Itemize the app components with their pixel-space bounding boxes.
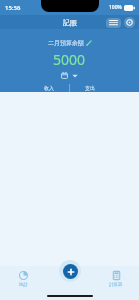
staticText: 100% bbox=[109, 4, 122, 11]
button[interactable]: 統計 bbox=[0, 266, 46, 288]
button[interactable]: 二月預算余額 bbox=[46, 38, 94, 48]
staticText: 統計 bbox=[19, 282, 28, 288]
staticText: 計算器 bbox=[109, 282, 123, 288]
staticText: 5000 bbox=[53, 50, 86, 69]
button[interactable]: 收入 bbox=[29, 84, 69, 92]
button[interactable]: Settings bbox=[124, 17, 135, 28]
button[interactable]: 計算器 bbox=[93, 266, 139, 288]
staticText: 支出 bbox=[85, 85, 95, 91]
button[interactable]: List view bbox=[106, 18, 121, 28]
button[interactable]: 支出 bbox=[70, 84, 110, 92]
button[interactable]: Select month bbox=[59, 71, 80, 80]
staticText: 15:56 bbox=[5, 4, 21, 12]
staticText: 二月預算余額 bbox=[48, 39, 84, 47]
staticText: 收入 bbox=[44, 85, 54, 91]
staticText: 記賬 bbox=[63, 18, 77, 27]
button[interactable]: Add record bbox=[63, 264, 78, 279]
